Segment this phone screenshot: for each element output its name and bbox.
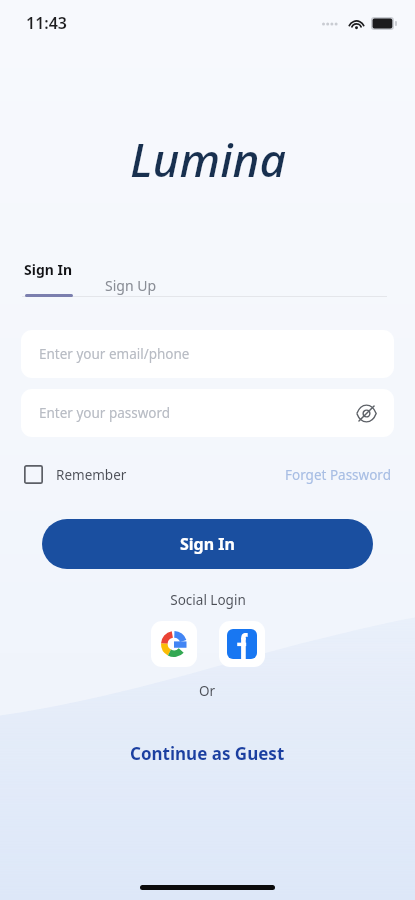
button[interactable]: Enter your password <box>21 389 394 437</box>
staticText: Lumina <box>130 128 286 191</box>
staticText: Sign In <box>24 260 73 279</box>
staticText: Continue as Guest <box>130 742 285 765</box>
staticText: Forget Password <box>285 466 391 484</box>
button[interactable]: Sign In <box>42 519 373 569</box>
staticText: Sign Up <box>105 276 157 295</box>
staticText: Sign In <box>180 533 235 555</box>
staticText: Remember <box>56 466 127 484</box>
staticText: 11:43 <box>26 12 68 34</box>
staticText: Or <box>199 682 216 700</box>
button[interactable]: Sign in with Google <box>151 621 197 667</box>
staticText: Enter your password <box>39 404 171 422</box>
button[interactable]: Sign In <box>22 258 75 297</box>
button[interactable]: Remember <box>24 461 127 488</box>
button[interactable]: Show password <box>350 397 382 429</box>
button[interactable]: Enter your email/phone <box>21 330 394 378</box>
button[interactable]: Sign in with Facebook <box>219 621 265 667</box>
button[interactable]: Sign Up <box>101 274 161 297</box>
staticText: Social Login <box>170 591 246 609</box>
staticText: Enter your email/phone <box>39 345 190 363</box>
button[interactable]: Forget Password <box>285 462 391 488</box>
button[interactable]: Continue as Guest <box>118 736 297 771</box>
